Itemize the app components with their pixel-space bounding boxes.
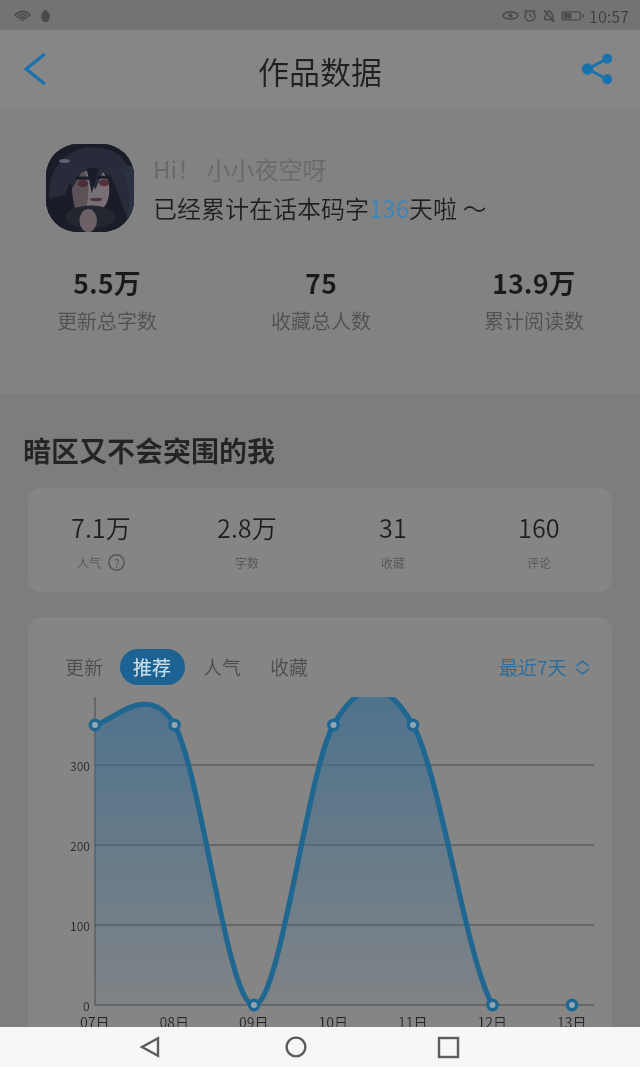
staticText: 收藏 bbox=[270, 653, 309, 681]
button[interactable]: Home bbox=[276, 1027, 316, 1067]
button[interactable]: 更新 bbox=[65, 649, 104, 685]
staticText: 更新 bbox=[65, 653, 104, 681]
staticText: 160 bbox=[518, 509, 560, 545]
staticText: Hi！ 小小夜空呀 bbox=[153, 151, 327, 186]
button[interactable]: Share bbox=[554, 30, 640, 108]
staticText: 更新总字数 bbox=[57, 306, 157, 335]
staticText: 累计阅读数 bbox=[484, 306, 584, 335]
staticText: 收藏 bbox=[381, 554, 406, 571]
staticText: 136 bbox=[369, 190, 409, 225]
button[interactable]: 人气 bbox=[203, 649, 242, 685]
button[interactable]: 推荐 bbox=[120, 649, 185, 685]
staticText: 人气 bbox=[77, 554, 102, 571]
button[interactable]: 75 bbox=[214, 263, 427, 335]
button[interactable]: Avatar bbox=[46, 144, 134, 232]
staticText: 天啦 ～ bbox=[409, 190, 487, 225]
staticText: 10:57 bbox=[589, 4, 629, 27]
button[interactable]: Recents bbox=[428, 1027, 468, 1067]
staticText: 评论 bbox=[527, 554, 552, 571]
button[interactable]: 最近7天 bbox=[499, 653, 590, 681]
staticText: 已经累计在话本码字 bbox=[153, 190, 369, 225]
staticText: 推荐 bbox=[133, 653, 172, 681]
staticText: 75 bbox=[305, 263, 337, 302]
staticText: 收藏总人数 bbox=[271, 306, 371, 335]
staticText: 7.1万 bbox=[71, 509, 131, 545]
staticText: 人气 bbox=[203, 653, 242, 681]
staticText: 作品数据 bbox=[258, 48, 382, 93]
staticText: 5.5万 bbox=[73, 263, 141, 302]
button[interactable]: Back bbox=[130, 1027, 170, 1067]
button[interactable]: 7.1万 bbox=[28, 488, 612, 592]
button[interactable]: Back bbox=[0, 30, 70, 108]
staticText: ? bbox=[114, 554, 120, 571]
staticText: 字数 bbox=[235, 554, 260, 571]
staticText: 31 bbox=[379, 509, 407, 545]
staticText: 2.8万 bbox=[217, 509, 277, 545]
button[interactable]: 5.5万 bbox=[0, 263, 214, 335]
staticText: 暗区又不会突围的我 bbox=[23, 430, 276, 471]
staticText: 最近7天 bbox=[499, 653, 567, 681]
staticText: 13.9万 bbox=[492, 263, 576, 302]
button[interactable]: 13.9万 bbox=[427, 263, 640, 335]
button[interactable]: 收藏 bbox=[270, 649, 309, 685]
